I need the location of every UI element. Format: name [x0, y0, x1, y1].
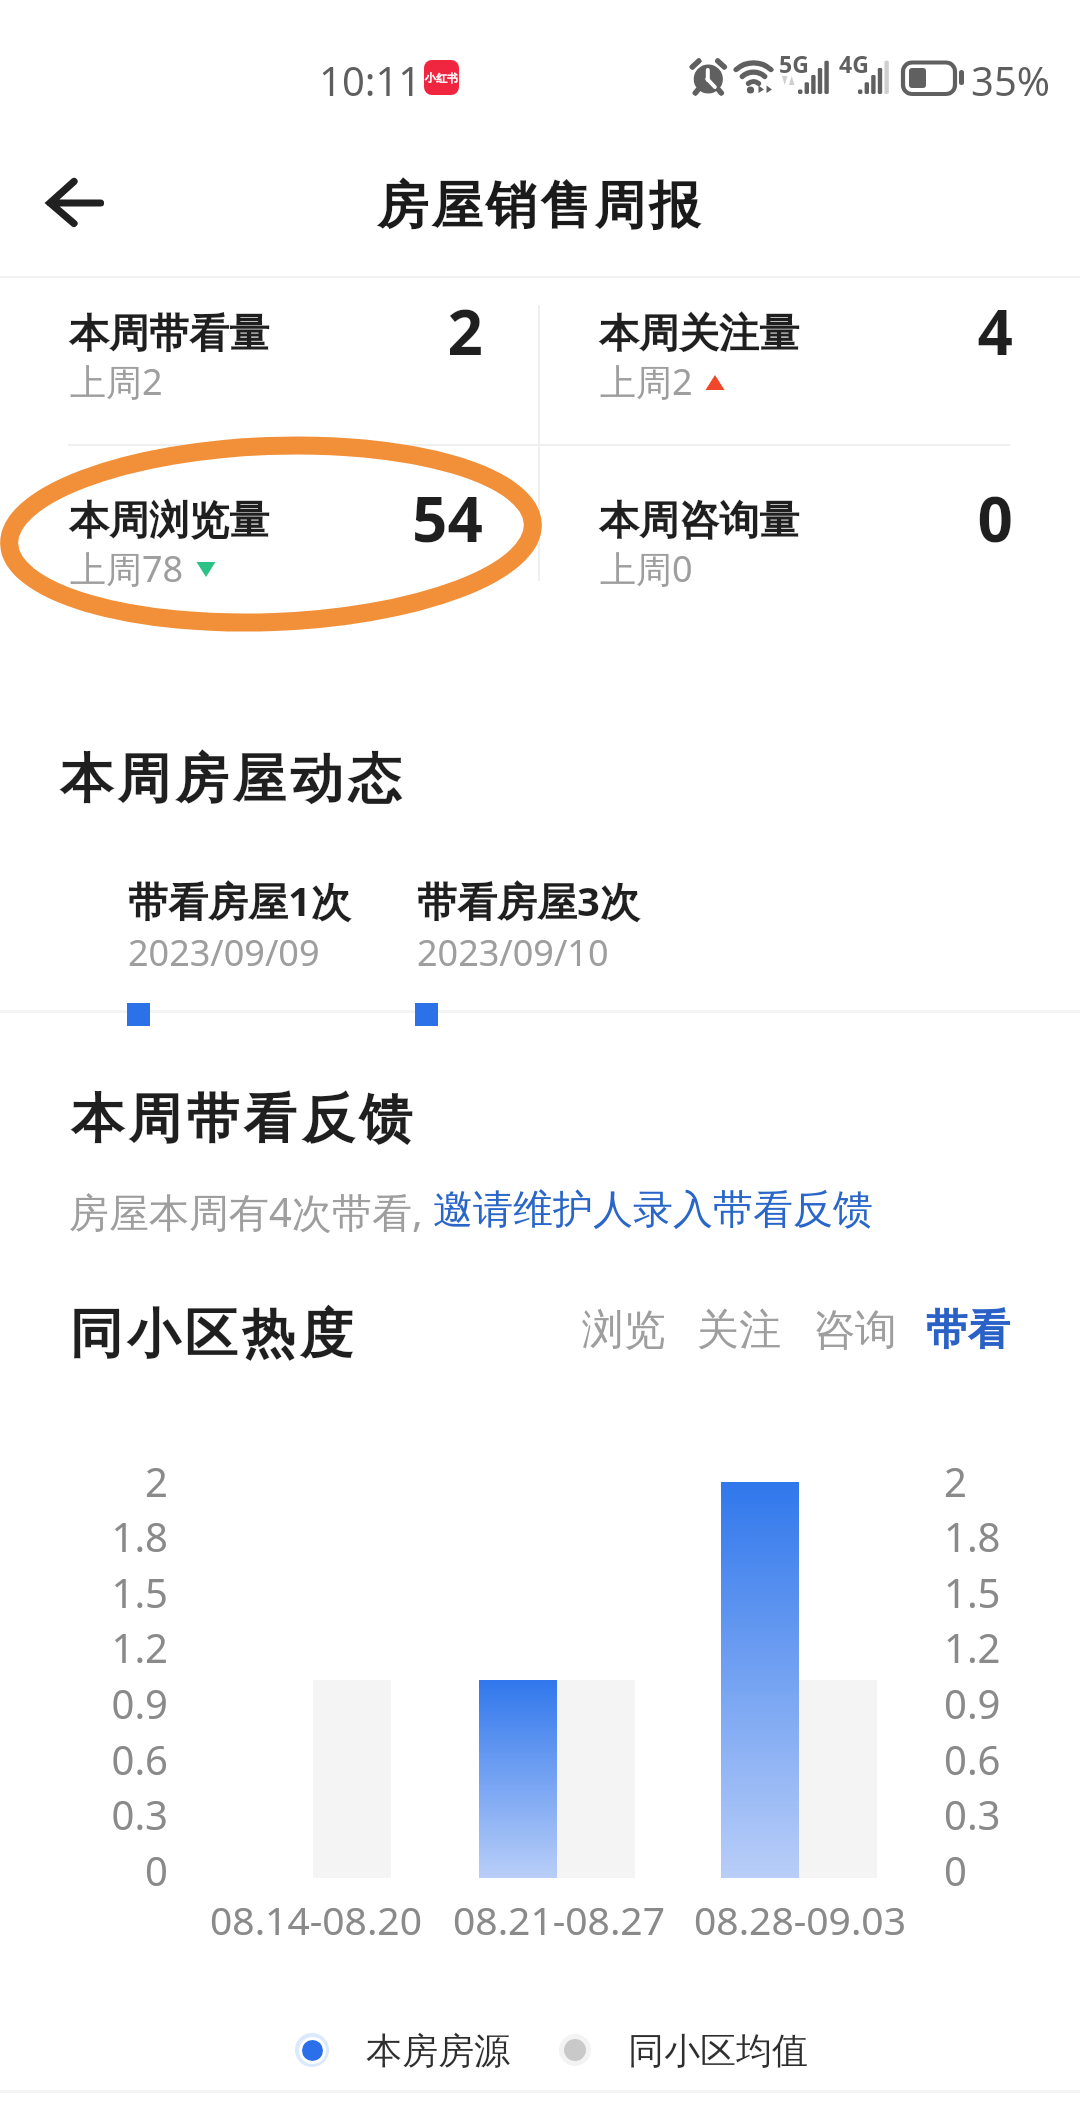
staticText: 4G: [839, 48, 869, 79]
staticText: 08.21-08.27: [409, 1893, 709, 1946]
staticText: 本房房源: [366, 2028, 510, 2073]
staticText: 54: [271, 476, 483, 560]
button[interactable]: 本周咨询量: [530, 483, 1070, 633]
staticText: 5G: [779, 48, 809, 79]
staticText: 本周带看反馈: [71, 1086, 417, 1153]
staticText: 上周2: [600, 357, 693, 406]
staticText: 1.8: [98, 1509, 168, 1563]
staticText: 咨询: [813, 1304, 897, 1357]
button[interactable]: 咨询: [801, 1300, 909, 1360]
staticText: 0.6: [944, 1732, 1014, 1786]
button[interactable]: 本周带看量: [0, 296, 540, 446]
staticText: 2023/09/09: [128, 928, 320, 977]
button[interactable]: 同小区均值: [559, 2022, 808, 2078]
staticText: 本周关注量: [599, 308, 799, 358]
staticText: 0.3: [98, 1787, 168, 1841]
staticText: 带看: [926, 1304, 1010, 1357]
staticText: 上周78: [70, 544, 184, 593]
staticText: 1.5: [944, 1565, 1014, 1619]
staticText: 上周0: [600, 544, 693, 593]
staticText: 2023/09/10: [417, 928, 609, 977]
button[interactable]: 带看: [914, 1300, 1022, 1360]
staticText: 2: [98, 1454, 168, 1508]
staticText: 0.3: [944, 1787, 1014, 1841]
button[interactable]: 关注: [685, 1300, 793, 1360]
staticText: 本周带看量: [69, 308, 269, 358]
staticText: 1.8: [944, 1509, 1014, 1563]
staticText: 1.2: [98, 1620, 168, 1674]
staticText: 0.6: [98, 1732, 168, 1786]
staticText: 0: [801, 476, 1013, 560]
staticText: 浏览: [582, 1304, 666, 1357]
button[interactable]: 本房房源: [295, 2022, 510, 2078]
staticText: 本周房屋动态: [60, 746, 406, 813]
staticText: 房屋本周有4次带看,: [69, 1184, 433, 1239]
staticText: 带看房屋3次: [417, 873, 640, 928]
staticText: 带看房屋1次: [128, 873, 351, 928]
staticText: 08.14-08.20: [166, 1893, 466, 1946]
staticText: 1.2: [944, 1620, 1014, 1674]
staticText: 本周浏览量: [69, 495, 269, 545]
staticText: 0: [944, 1843, 1014, 1897]
staticText: 2: [944, 1454, 1014, 1508]
staticText: 小红书: [425, 71, 458, 85]
button[interactable]: 邀请维护人录入带看反馈: [433, 1184, 873, 1234]
staticText: 35%: [971, 53, 1050, 107]
button[interactable]: 本周浏览量: [0, 483, 540, 633]
staticText: 4: [801, 289, 1013, 373]
staticText: 上周2: [70, 357, 163, 406]
staticText: 0.9: [98, 1676, 168, 1730]
staticText: 10:11: [319, 53, 422, 107]
staticText: 关注: [697, 1304, 781, 1357]
button[interactable]: 浏览: [570, 1300, 678, 1360]
button[interactable]: Back: [18, 158, 132, 248]
button[interactable]: 本周关注量: [530, 296, 1070, 446]
staticText: 同小区热度: [67, 1301, 355, 1368]
staticText: 0.9: [944, 1676, 1014, 1730]
staticText: 2: [271, 289, 483, 373]
staticText: 本周咨询量: [599, 495, 799, 545]
staticText: 08.28-09.03: [650, 1893, 950, 1946]
staticText: 同小区均值: [628, 2028, 808, 2073]
staticText: 邀请维护人录入带看反馈: [433, 1184, 873, 1234]
staticText: 1.5: [98, 1565, 168, 1619]
staticText: 0: [98, 1843, 168, 1897]
staticText: 房屋销售周报: [377, 174, 704, 238]
